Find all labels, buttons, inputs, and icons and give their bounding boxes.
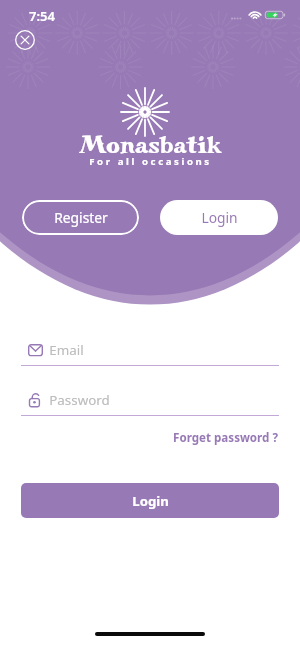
staticText: 7:54: [29, 7, 55, 25]
staticText: For all occasions: [89, 155, 212, 168]
button[interactable]: Register: [22, 200, 139, 235]
staticText: Login: [201, 208, 238, 227]
button[interactable]: Close: [15, 30, 35, 50]
staticText: Monasbatik: [79, 131, 222, 160]
button[interactable]: Login: [21, 483, 279, 518]
button[interactable]: Login: [160, 200, 278, 235]
staticText: Email: [49, 341, 84, 358]
staticText: Login: [132, 492, 169, 510]
staticText: Forget password ?: [173, 430, 278, 446]
staticText: Password: [49, 391, 110, 408]
button[interactable]: Forget password ?: [172, 427, 279, 449]
staticText: Register: [54, 208, 108, 227]
